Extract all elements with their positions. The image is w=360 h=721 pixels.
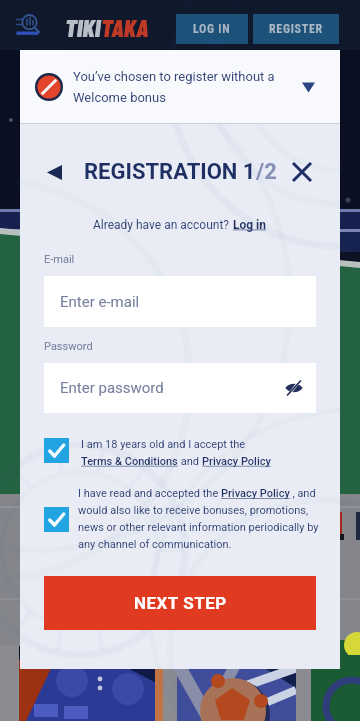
staticText: Terms & Conditions — [81, 455, 178, 468]
staticText: /2 — [256, 159, 277, 185]
button[interactable]: I have read and accepted the Privacy Pol… — [44, 487, 316, 551]
staticText: REGISTRATION 1 — [84, 159, 256, 185]
staticText: Privacy Policy — [202, 455, 271, 468]
staticText: and — [178, 455, 202, 468]
button[interactable]: Search — [10, 9, 46, 41]
staticText: Enter e-mail — [60, 293, 140, 311]
staticText: Already have an account? — [93, 218, 233, 232]
button[interactable]: Back — [40, 159, 68, 185]
staticText: TIKI — [65, 12, 101, 41]
staticText: I am 18 years old and I accept the — [81, 438, 246, 451]
staticText: Password — [44, 340, 93, 353]
button[interactable]: Show password — [283, 377, 305, 399]
button[interactable]: Enter e-mail — [44, 276, 316, 327]
button[interactable]: You’ve chosen to register without a Welc… — [20, 50, 340, 123]
button[interactable]: Log in — [233, 218, 267, 232]
button[interactable]: REGISTER — [253, 14, 339, 44]
button[interactable]: NEXT STEP — [44, 576, 316, 630]
other: Expand — [297, 76, 319, 98]
button[interactable]: I am 18 years old and I accept the — [44, 438, 316, 468]
button[interactable]: LOG IN — [176, 14, 248, 44]
staticText: E-mail — [44, 253, 75, 266]
staticText: LOG IN — [193, 22, 231, 36]
staticText: I have read and accepted the Privacy Pol… — [78, 487, 320, 551]
staticText: NEXT STEP — [134, 593, 227, 613]
button[interactable]: Close — [288, 159, 316, 185]
staticText: TAKA — [101, 12, 149, 41]
staticText: You’ve chosen to register without a Welc… — [73, 69, 291, 105]
staticText: Enter password — [60, 379, 164, 397]
staticText: REGISTER — [269, 22, 323, 36]
button[interactable]: Enter password — [44, 363, 316, 413]
